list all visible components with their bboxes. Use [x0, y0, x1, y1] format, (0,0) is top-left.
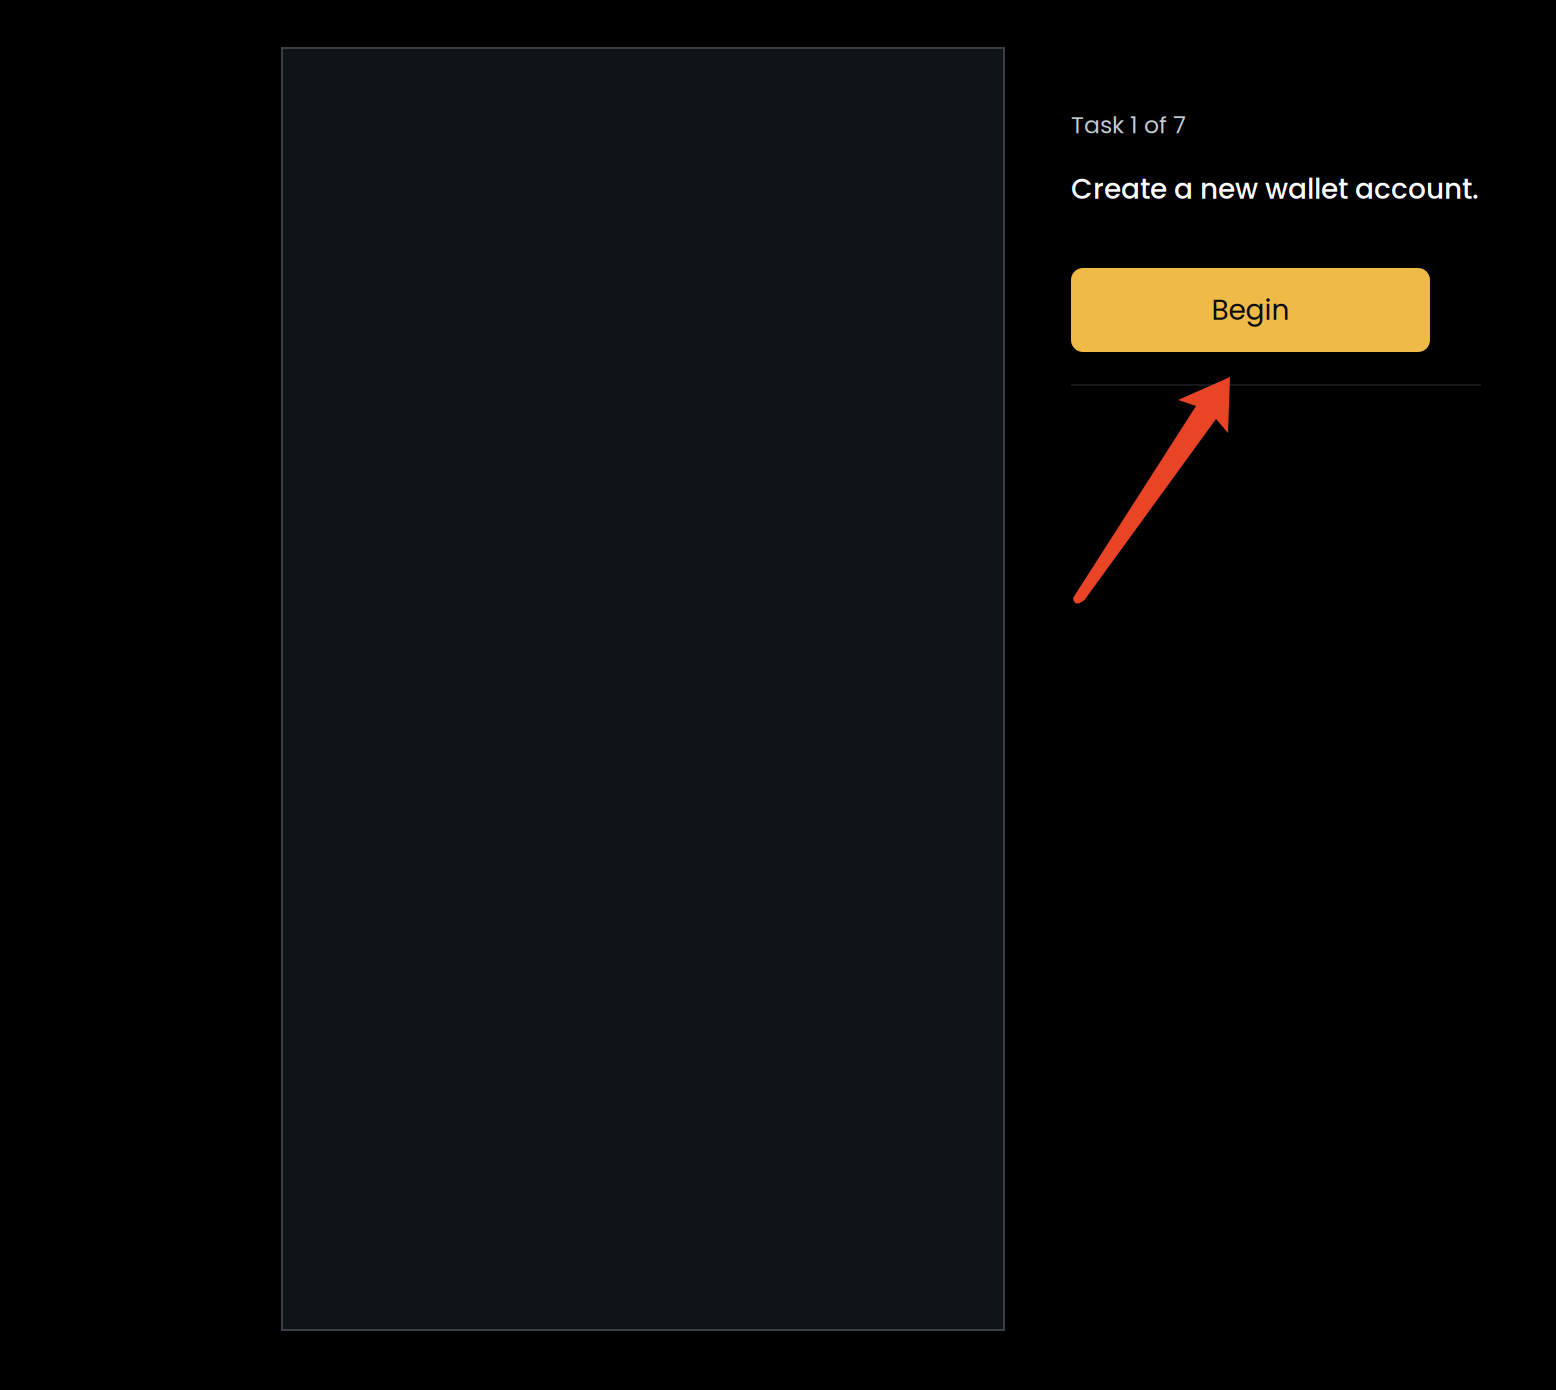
staticText: Begin: [1211, 290, 1289, 330]
staticText: Create a new wallet account.: [1071, 169, 1479, 209]
button[interactable]: Begin: [1071, 268, 1430, 352]
staticText: Task 1 of 7: [1071, 108, 1186, 141]
